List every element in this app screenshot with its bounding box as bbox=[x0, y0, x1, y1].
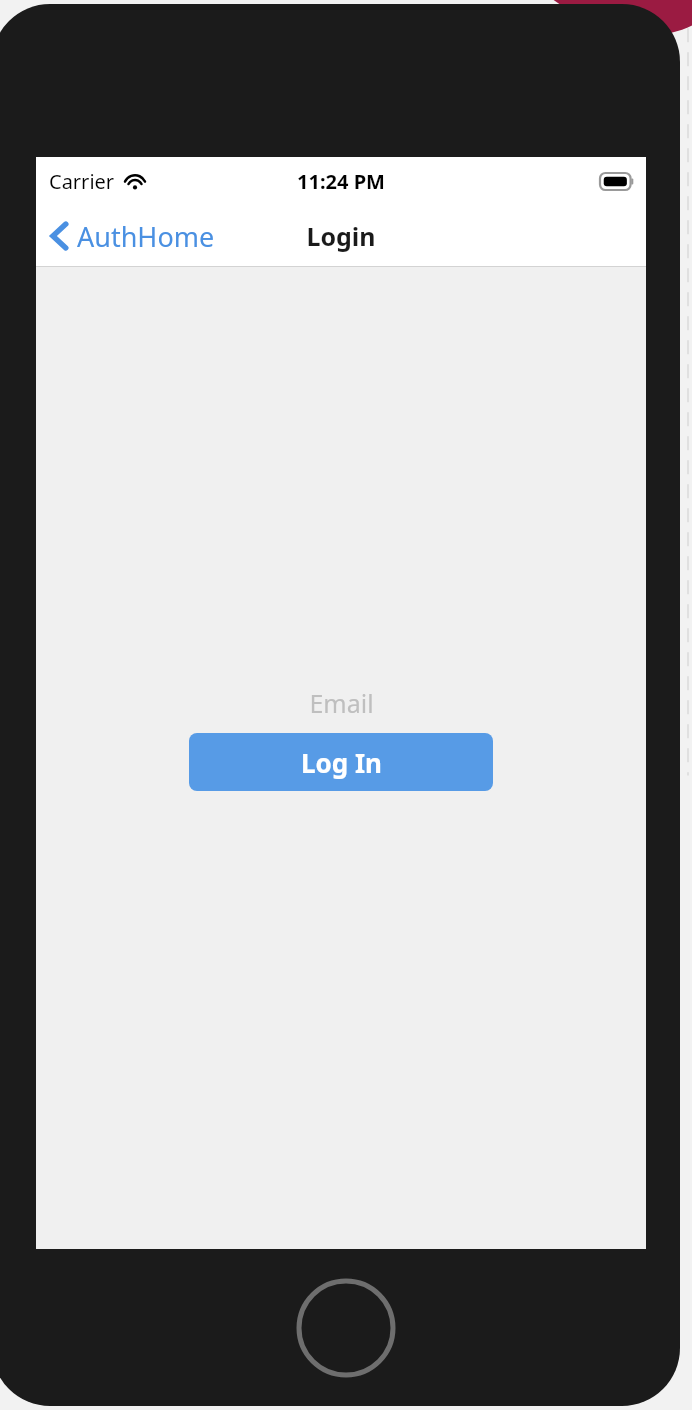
staticText: 11:24 PM bbox=[297, 168, 385, 195]
button[interactable]: Log In bbox=[189, 733, 493, 791]
button[interactable]: Home bbox=[296, 1278, 396, 1378]
staticText: Log In bbox=[301, 745, 382, 780]
button[interactable]: AuthHome bbox=[36, 205, 225, 267]
staticText: Email bbox=[309, 686, 374, 720]
staticText: Login bbox=[306, 219, 376, 253]
staticText: AuthHome bbox=[77, 218, 215, 255]
staticText: Carrier bbox=[49, 168, 115, 195]
button[interactable]: Email bbox=[189, 681, 493, 725]
